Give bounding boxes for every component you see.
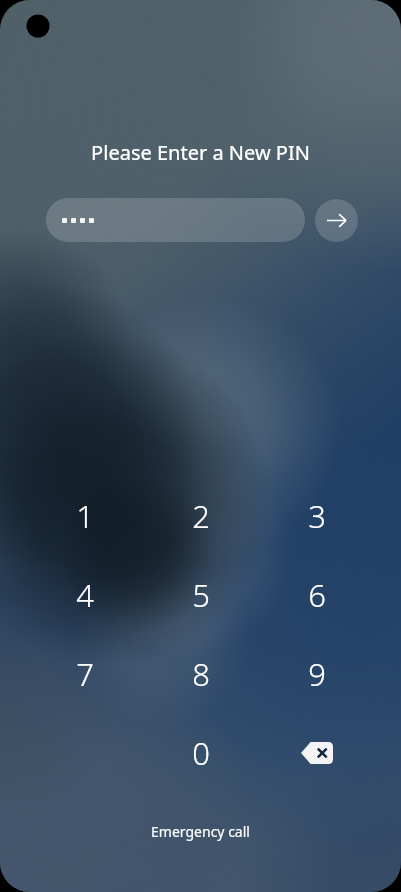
button[interactable]: 8 [153,634,249,713]
button[interactable]: 9 [269,634,365,713]
button[interactable]: 7 [37,634,133,713]
staticText: 7 [76,653,94,695]
staticText: Please Enter a New PIN [91,139,310,166]
button[interactable]: 5 [153,555,249,634]
button[interactable]: 0 [153,713,249,792]
staticText: 2 [192,495,210,537]
button[interactable]: 3 [269,476,365,555]
button[interactable]: 6 [269,555,365,634]
button[interactable]: Submit PIN [315,199,358,242]
staticText: 0 [192,732,210,774]
button[interactable]: 2 [153,476,249,555]
staticText: Emergency call [151,822,250,841]
button[interactable]: 1 [37,476,133,555]
staticText: 6 [308,574,326,616]
staticText: 3 [308,495,326,537]
staticText: 9 [308,653,326,695]
button[interactable]: Backspace [269,713,365,792]
staticText: 5 [192,574,210,616]
button[interactable]: Emergency call [133,814,268,849]
staticText: 4 [76,574,94,616]
staticText: 1 [76,495,94,537]
button[interactable]: 4 [37,555,133,634]
button[interactable] [46,198,305,242]
staticText: 8 [192,653,210,695]
